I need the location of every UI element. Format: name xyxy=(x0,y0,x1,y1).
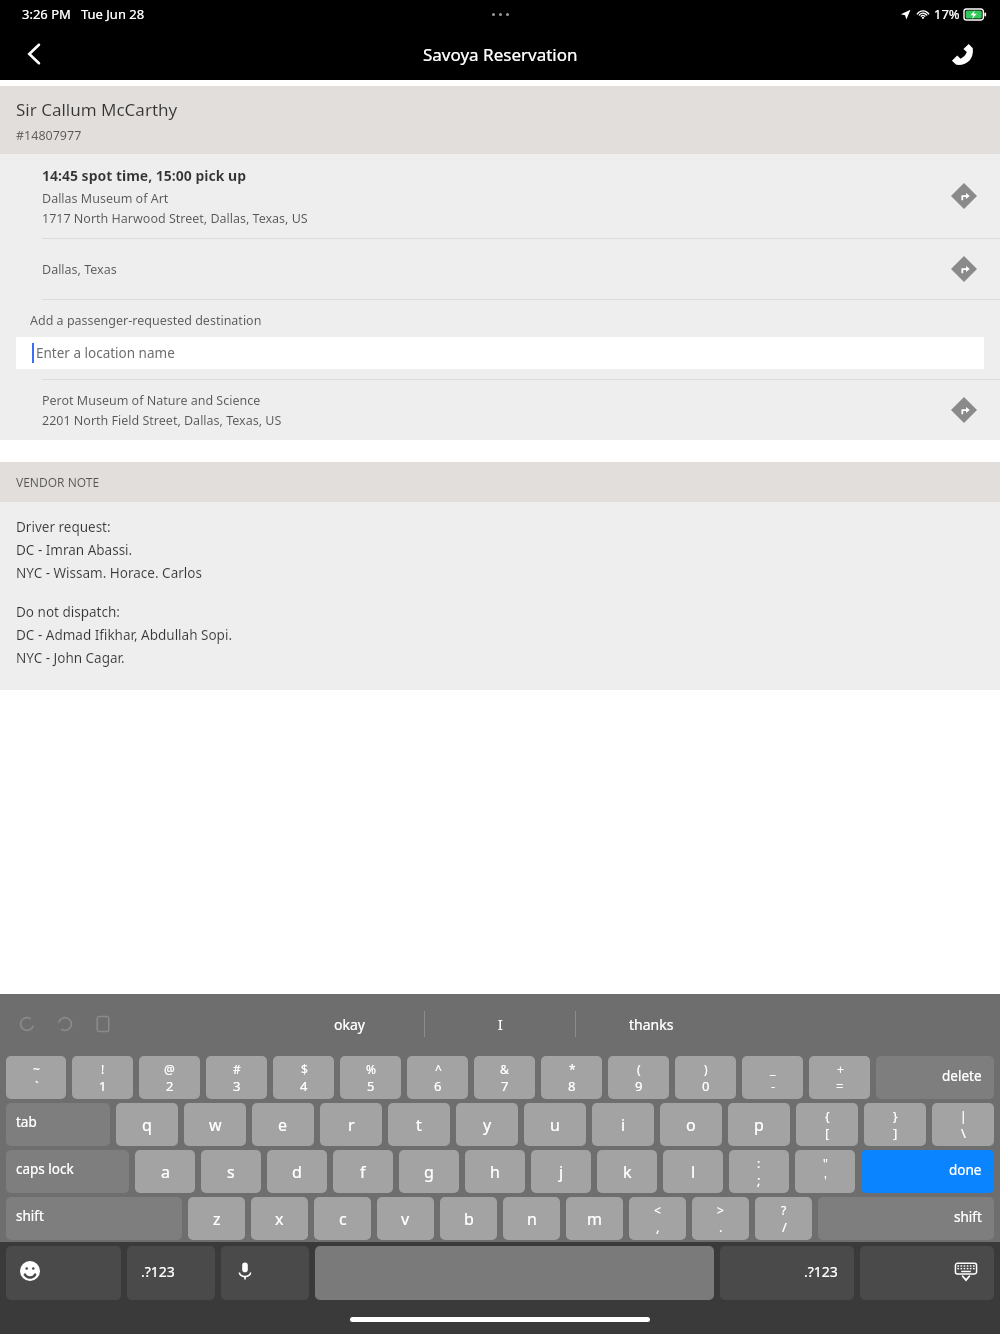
button[interactable]: % xyxy=(340,1056,401,1099)
button[interactable]: Dallas, Texas xyxy=(0,239,1000,299)
staticText: . xyxy=(719,1218,723,1235)
button[interactable]: okay xyxy=(274,1002,424,1046)
staticText: Add a passenger-requested destination xyxy=(30,312,262,329)
staticText: / xyxy=(782,1218,787,1235)
button[interactable]: tab xyxy=(6,1103,110,1146)
button[interactable]: d xyxy=(267,1150,327,1193)
button[interactable]: f xyxy=(333,1150,393,1193)
button[interactable]: { xyxy=(796,1103,858,1146)
button[interactable]: Undo xyxy=(16,1013,38,1035)
button[interactable]: a xyxy=(135,1150,195,1193)
button[interactable]: caps lock xyxy=(6,1150,129,1193)
staticText: VENDOR NOTE xyxy=(16,474,100,490)
button[interactable]: $ xyxy=(273,1056,334,1099)
staticText: 1717 North Harwood Street, Dallas, Texas… xyxy=(42,210,308,227)
staticText: h xyxy=(490,1161,500,1183)
button[interactable]: ! xyxy=(72,1056,133,1099)
button[interactable]: ) xyxy=(675,1056,736,1099)
button[interactable]: _ xyxy=(742,1056,803,1099)
button[interactable]: b xyxy=(440,1197,497,1240)
button[interactable]: " xyxy=(795,1150,855,1193)
staticText: = xyxy=(836,1077,844,1094)
button[interactable]: c xyxy=(314,1197,371,1240)
button[interactable]: : xyxy=(729,1150,789,1193)
button[interactable]: Perot Museum of Nature and Science xyxy=(0,380,1000,440)
button[interactable]: * xyxy=(541,1056,602,1099)
button[interactable]: j xyxy=(531,1150,591,1193)
button[interactable]: > xyxy=(692,1197,749,1240)
button[interactable]: # xyxy=(206,1056,267,1099)
button[interactable]: .?123 xyxy=(127,1246,215,1300)
button[interactable]: r xyxy=(320,1103,382,1146)
button[interactable]: Call xyxy=(924,28,1000,80)
button[interactable]: k xyxy=(597,1150,657,1193)
button[interactable]: g xyxy=(399,1150,459,1193)
button[interactable]: } xyxy=(864,1103,926,1146)
staticText: 9 xyxy=(635,1077,643,1094)
button[interactable]: thanks xyxy=(576,1002,726,1046)
button[interactable]: y xyxy=(456,1103,518,1146)
button[interactable]: u xyxy=(524,1103,586,1146)
button[interactable]: o xyxy=(660,1103,722,1146)
button[interactable]: i xyxy=(592,1103,654,1146)
button[interactable]: shift xyxy=(818,1197,994,1240)
button[interactable]: Back xyxy=(0,28,70,80)
button[interactable]: Redo xyxy=(54,1013,76,1035)
button[interactable]: l xyxy=(663,1150,723,1193)
button[interactable]: Navigate xyxy=(950,255,978,283)
button[interactable]: @ xyxy=(139,1056,200,1099)
staticText: 1 xyxy=(99,1077,107,1094)
button[interactable]: Emoji xyxy=(6,1246,121,1300)
button[interactable]: ( xyxy=(608,1056,669,1099)
button[interactable]: m xyxy=(566,1197,623,1240)
button[interactable]: < xyxy=(629,1197,686,1240)
button[interactable]: v xyxy=(377,1197,434,1240)
button[interactable]: z xyxy=(188,1197,245,1240)
button[interactable]: & xyxy=(474,1056,535,1099)
button[interactable]: ^ xyxy=(407,1056,468,1099)
button[interactable]: n xyxy=(503,1197,560,1240)
button[interactable]: ~ xyxy=(6,1056,66,1099)
button[interactable]: w xyxy=(184,1103,246,1146)
staticText: | xyxy=(960,1108,967,1124)
staticText: Enter a location name xyxy=(36,344,175,362)
staticText: 17% xyxy=(934,5,960,23)
staticText: 3 xyxy=(233,1077,241,1094)
button[interactable]: shift xyxy=(6,1197,182,1240)
button[interactable]: .?123 xyxy=(720,1246,854,1300)
button[interactable]: Paste xyxy=(92,1013,114,1035)
button[interactable]: 14:45 spot time, 15:00 pick up xyxy=(0,154,1000,238)
staticText: Sir Callum McCarthy xyxy=(16,98,178,121)
button[interactable]: q xyxy=(116,1103,178,1146)
staticText: 14:45 spot time, 15:00 pick up xyxy=(42,166,246,185)
button[interactable]: Enter a location name xyxy=(16,337,984,369)
button[interactable]: + xyxy=(809,1056,870,1099)
staticText: Do not dispatch: xyxy=(16,603,120,621)
button[interactable]: x xyxy=(251,1197,308,1240)
staticText: Driver request: xyxy=(16,518,111,536)
button[interactable]: delete xyxy=(876,1056,994,1099)
button[interactable]: ? xyxy=(755,1197,812,1240)
staticText: ~ xyxy=(33,1061,40,1077)
button[interactable]: e xyxy=(252,1103,314,1146)
button[interactable]: t xyxy=(388,1103,450,1146)
staticText: x xyxy=(275,1208,284,1230)
button[interactable]: Hide keyboard xyxy=(860,1246,994,1300)
staticText: done xyxy=(949,1161,982,1179)
staticText: w xyxy=(209,1114,222,1136)
staticText: Perot Museum of Nature and Science xyxy=(42,392,261,409)
button[interactable]: done xyxy=(861,1150,994,1193)
button[interactable]: h xyxy=(465,1150,525,1193)
button[interactable]: I xyxy=(425,1002,575,1046)
button[interactable]: | xyxy=(932,1103,994,1146)
button[interactable]: s xyxy=(201,1150,261,1193)
staticText: : xyxy=(757,1155,761,1171)
other: Dictate xyxy=(235,1261,255,1281)
staticText: a xyxy=(161,1161,170,1183)
button[interactable]: Navigate xyxy=(950,396,978,424)
button[interactable]: p xyxy=(728,1103,790,1146)
button[interactable]: Navigate xyxy=(950,182,978,210)
staticText: p xyxy=(754,1114,764,1136)
button[interactable]: Dictate xyxy=(221,1246,309,1300)
